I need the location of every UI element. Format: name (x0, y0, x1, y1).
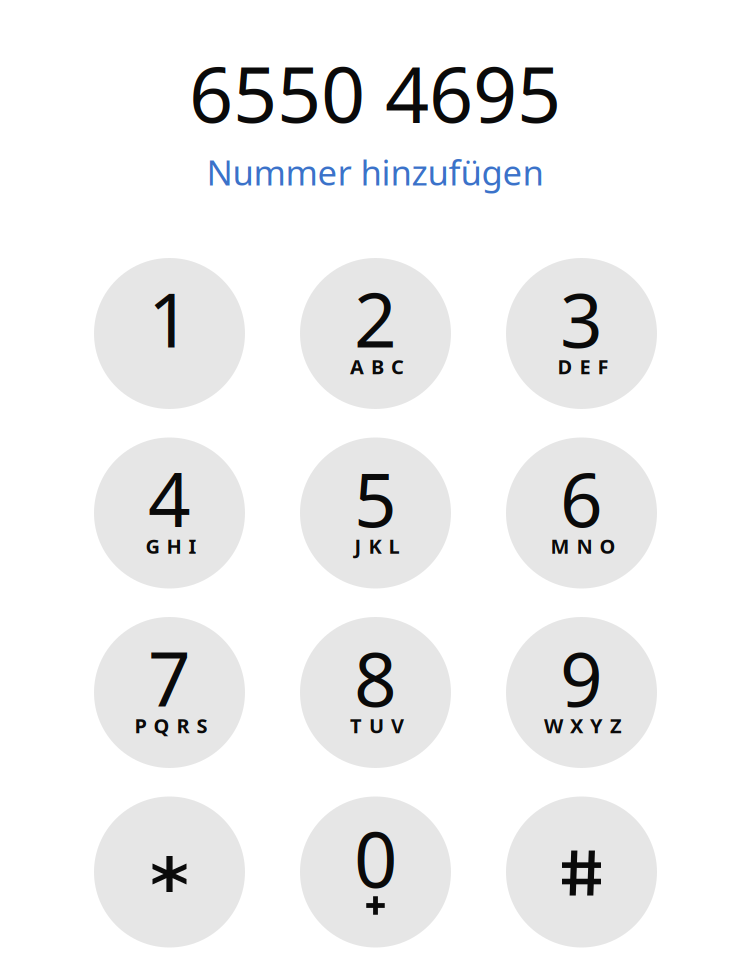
staticText: 1 (148, 269, 191, 368)
button[interactable]: 1 (94, 258, 245, 409)
button[interactable]: 3 DEF (506, 258, 657, 409)
staticText: T U V (350, 712, 404, 739)
staticText: M N O (550, 533, 615, 559)
staticText: P Q R S (134, 712, 207, 739)
staticText: A B C (350, 353, 404, 380)
staticText: 9 (560, 628, 603, 727)
button[interactable]: 6 MNO (506, 437, 657, 588)
button[interactable]: 5 JKL (300, 437, 451, 588)
button[interactable]: 8 TUV (300, 617, 451, 768)
staticText: 4 (148, 448, 191, 548)
button[interactable]: Pound (506, 796, 657, 947)
button[interactable]: 7 PQRS (94, 617, 245, 768)
staticText: 5 (354, 448, 397, 548)
staticText: 7 (148, 628, 191, 727)
button[interactable]: Star (94, 796, 245, 947)
staticText: D E F (557, 353, 608, 380)
staticText: 6 (560, 448, 603, 548)
staticText: Nummer hinzufügen (206, 149, 543, 195)
staticText: J K L (354, 533, 399, 559)
button[interactable]: 9 WXYZ (506, 617, 657, 768)
button[interactable]: 2 ABC (300, 258, 451, 409)
staticText: 3 (560, 269, 603, 368)
button[interactable]: Nummer hinzufügen (145, 146, 605, 198)
staticText: W X Y Z (544, 712, 622, 739)
staticText: 8 (354, 628, 397, 727)
staticText: G H I (145, 533, 196, 559)
staticText: 0 (354, 807, 397, 908)
staticText: 2 (354, 269, 397, 368)
staticText: 6550 4695 (189, 41, 561, 144)
button[interactable]: Zero, plus (300, 796, 451, 947)
button[interactable]: 4 GHI (94, 437, 245, 588)
